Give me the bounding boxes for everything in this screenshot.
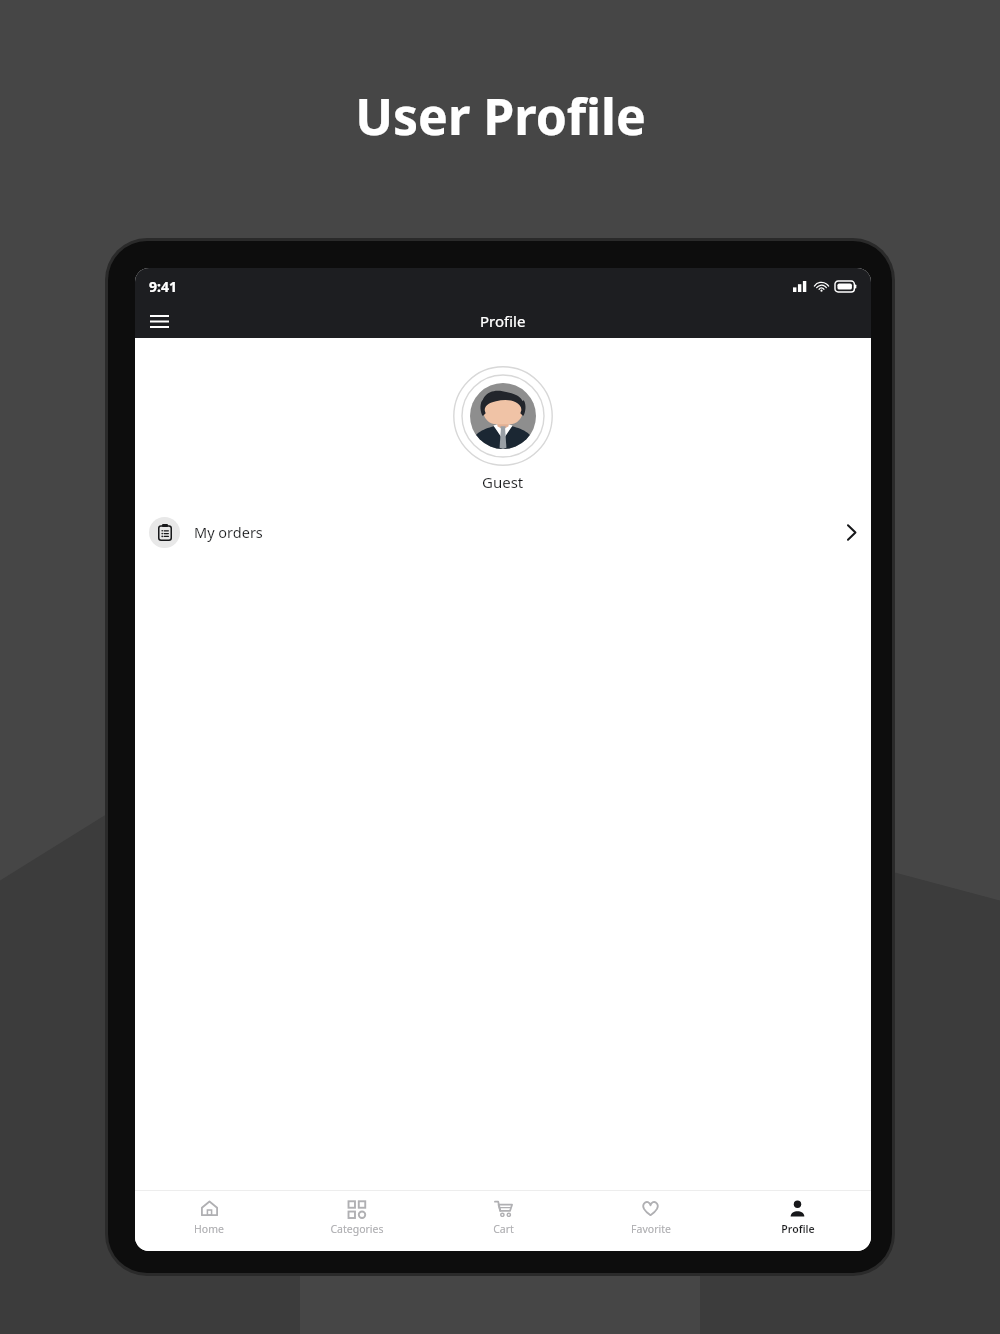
button[interactable]: My orders [135, 506, 871, 558]
staticText: Home [194, 1222, 224, 1236]
button[interactable]: Cart [430, 1199, 577, 1251]
staticText: Guest [482, 472, 524, 492]
staticText: 9:41 [149, 277, 177, 296]
staticText: Cart [493, 1222, 514, 1236]
button[interactable]: Profile [724, 1199, 871, 1251]
button[interactable]: Favorite [577, 1199, 724, 1251]
staticText: User Profile [355, 82, 646, 150]
button[interactable]: Home [135, 1199, 283, 1251]
staticText: My orders [194, 522, 263, 542]
staticText: Profile [781, 1222, 815, 1236]
staticText: Categories [330, 1222, 384, 1236]
staticText: Favorite [631, 1222, 671, 1236]
staticText: Profile [480, 311, 526, 331]
button[interactable]: Profile picture [453, 366, 553, 466]
button[interactable]: Open navigation menu [143, 305, 175, 337]
button[interactable]: Categories [283, 1199, 430, 1251]
